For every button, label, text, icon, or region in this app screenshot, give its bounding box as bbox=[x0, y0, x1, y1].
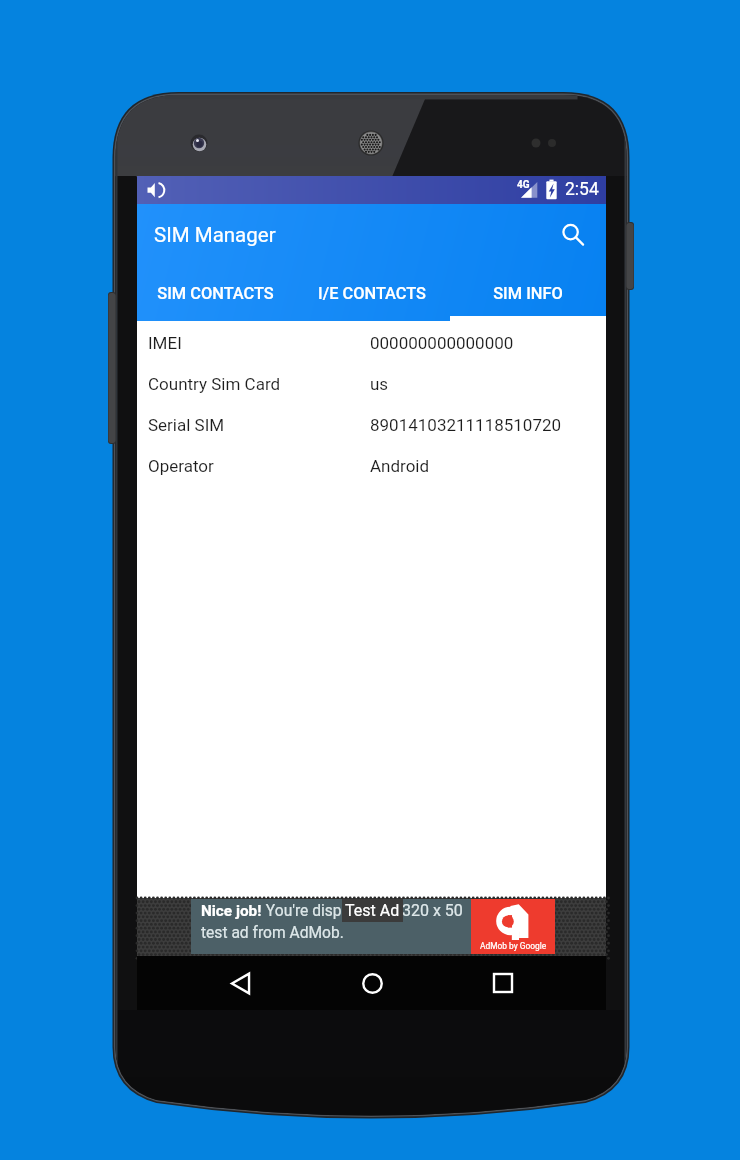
button[interactable]: SIM CONTACTS bbox=[137, 266, 294, 321]
button[interactable]: Country Sim Card bbox=[137, 363, 606, 404]
staticText: SIM INFO bbox=[493, 284, 563, 303]
staticText: I/E CONTACTS bbox=[318, 284, 426, 303]
staticText: 2:54 bbox=[565, 179, 599, 200]
staticText: IMEI bbox=[148, 333, 370, 353]
staticText: 320 x 50 bbox=[402, 901, 463, 920]
button[interactable]: SIM INFO bbox=[450, 266, 606, 321]
staticText: AdMob by Google bbox=[480, 941, 547, 951]
staticText: You're displaying a bbox=[262, 902, 395, 920]
staticText: Country Sim Card bbox=[148, 374, 370, 394]
staticText: Test Ad bbox=[345, 901, 400, 920]
staticText: Nice job! bbox=[201, 902, 262, 920]
staticText: 89014103211118510720 bbox=[370, 415, 562, 435]
button[interactable]: Serial SIM bbox=[137, 404, 606, 445]
button[interactable]: I/E CONTACTS bbox=[294, 266, 450, 321]
staticText: SIM CONTACTS bbox=[157, 284, 274, 303]
button[interactable]: IMEI bbox=[137, 322, 606, 363]
staticText: Android bbox=[370, 456, 430, 476]
button[interactable]: Recents bbox=[475, 956, 531, 1010]
staticText: test ad from AdMob. bbox=[201, 924, 344, 942]
staticText: 000000000000000 bbox=[370, 333, 514, 353]
staticText: SIM Manager bbox=[154, 223, 276, 247]
staticText: 4G bbox=[517, 179, 530, 191]
button[interactable]: Search bbox=[554, 216, 592, 254]
staticText: Serial SIM bbox=[148, 415, 370, 435]
staticText: Operator bbox=[148, 456, 370, 476]
button[interactable]: Operator bbox=[137, 445, 606, 486]
button[interactable]: Nice job! bbox=[191, 899, 555, 954]
button[interactable]: Back bbox=[212, 956, 268, 1010]
button[interactable]: Home bbox=[344, 956, 400, 1010]
staticText: us bbox=[370, 374, 389, 394]
